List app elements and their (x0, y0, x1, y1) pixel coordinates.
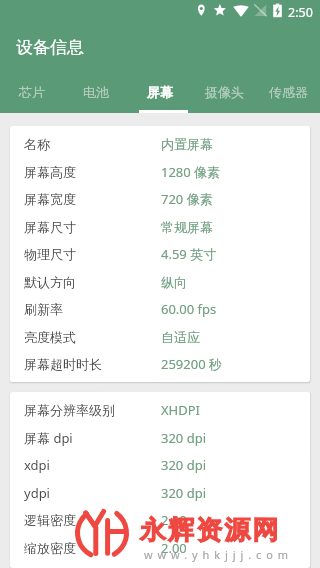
staticText: 320 dpi (161, 429, 207, 447)
staticText: 屏幕宽度 (24, 191, 161, 207)
staticText: 屏幕 (147, 84, 173, 100)
staticText: 320 dpi (161, 456, 207, 474)
staticText: 屏幕超时时长 (24, 356, 161, 372)
button[interactable]: 逻辑密度 (10, 506, 310, 534)
button[interactable]: 刷新率 (10, 295, 310, 323)
staticText: xdpi (24, 456, 161, 474)
button[interactable]: 屏幕超时时长 (10, 350, 310, 378)
button[interactable]: 亮度模式 (10, 323, 310, 350)
button[interactable]: ydpi (10, 479, 310, 506)
staticText: 320 dpi (161, 484, 207, 502)
button[interactable]: 物理尺寸 (10, 240, 310, 268)
staticText: 屏幕 dpi (24, 429, 161, 447)
staticText: 2:50 (288, 4, 313, 21)
staticText: 屏幕分辨率级别 (24, 402, 161, 418)
staticText: ydpi (24, 484, 161, 502)
staticText: 60.00 fps (161, 300, 217, 318)
button[interactable] (10, 561, 310, 564)
staticText: XHDPI (161, 401, 201, 419)
button[interactable]: 芯片 (0, 71, 64, 113)
staticText: 屏幕尺寸 (24, 219, 161, 235)
button[interactable]: 屏幕宽度 (10, 185, 310, 213)
staticText: 摄像头 (205, 84, 244, 100)
staticText: 自适应 (161, 329, 200, 345)
staticText: www.yhkjjj.com (144, 547, 294, 562)
button[interactable]: 缩放密度 (10, 534, 310, 561)
button[interactable]: 默认方向 (10, 268, 310, 295)
staticText: 纵向 (161, 274, 187, 290)
staticText: 刷新率 (24, 301, 161, 317)
staticText: 永辉资源网 (140, 514, 281, 547)
button[interactable]: 屏幕 (128, 71, 192, 113)
staticText: 720 像素 (161, 190, 213, 208)
button[interactable]: 摄像头 (192, 71, 256, 113)
staticText: 传感器 (269, 84, 308, 100)
staticText: 2.00 (161, 511, 187, 529)
button[interactable]: 传感器 (256, 71, 320, 113)
staticText: 屏幕高度 (24, 164, 161, 180)
button[interactable]: 屏幕高度 (10, 158, 310, 185)
button[interactable]: xdpi (10, 451, 310, 479)
button[interactable]: 电池 (64, 71, 128, 113)
button[interactable]: 屏幕分辨率级别 (10, 396, 310, 424)
staticText: 名称 (24, 136, 161, 152)
staticText: 常规屏幕 (161, 219, 213, 235)
staticText: 物理尺寸 (24, 246, 161, 262)
staticText: 内置屏幕 (161, 136, 213, 152)
staticText: 缩放密度 (24, 540, 161, 556)
staticText: 4.59 英寸 (161, 245, 217, 263)
staticText: 逻辑密度 (24, 512, 161, 528)
staticText: 1280 像素 (161, 163, 221, 181)
staticText: 芯片 (19, 84, 45, 100)
staticText: 259200 秒 (161, 355, 222, 373)
staticText: 设备信息 (16, 37, 84, 58)
button[interactable]: 屏幕 dpi (10, 424, 310, 451)
staticText: 亮度模式 (24, 329, 161, 345)
staticText: 默认方向 (24, 274, 161, 290)
staticText: 电池 (83, 84, 109, 100)
button[interactable]: 名称 (10, 130, 310, 158)
button[interactable]: 屏幕尺寸 (10, 213, 310, 240)
staticText: 2.00 (161, 539, 187, 557)
